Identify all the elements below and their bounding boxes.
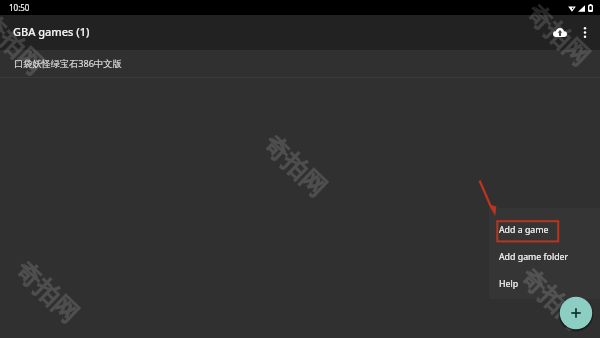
staticText: GBA games (1) <box>13 24 90 39</box>
staticText: 奇拍网 <box>514 262 590 336</box>
staticText: 奇拍网 <box>257 129 333 203</box>
button[interactable]: More options <box>574 21 596 43</box>
staticText: 奇拍网 <box>9 255 85 329</box>
button[interactable]: Upload to cloud <box>546 18 574 46</box>
staticText: 奇拍网 <box>0 7 50 81</box>
button[interactable]: Add game <box>558 295 594 331</box>
staticText: 口袋妖怪绿宝石386中文版 <box>14 57 122 70</box>
staticText: Add a game <box>499 224 549 236</box>
button[interactable]: Help <box>489 270 600 297</box>
staticText: Add game folder <box>499 251 569 263</box>
staticText: Help <box>499 278 519 290</box>
button[interactable]: Add game folder <box>489 243 600 270</box>
staticText: 10:50 <box>9 2 30 13</box>
button[interactable]: 口袋妖怪绿宝石386中文版 <box>0 50 600 77</box>
staticText: 奇拍网 <box>520 0 596 72</box>
button[interactable]: Add a game <box>489 216 600 243</box>
